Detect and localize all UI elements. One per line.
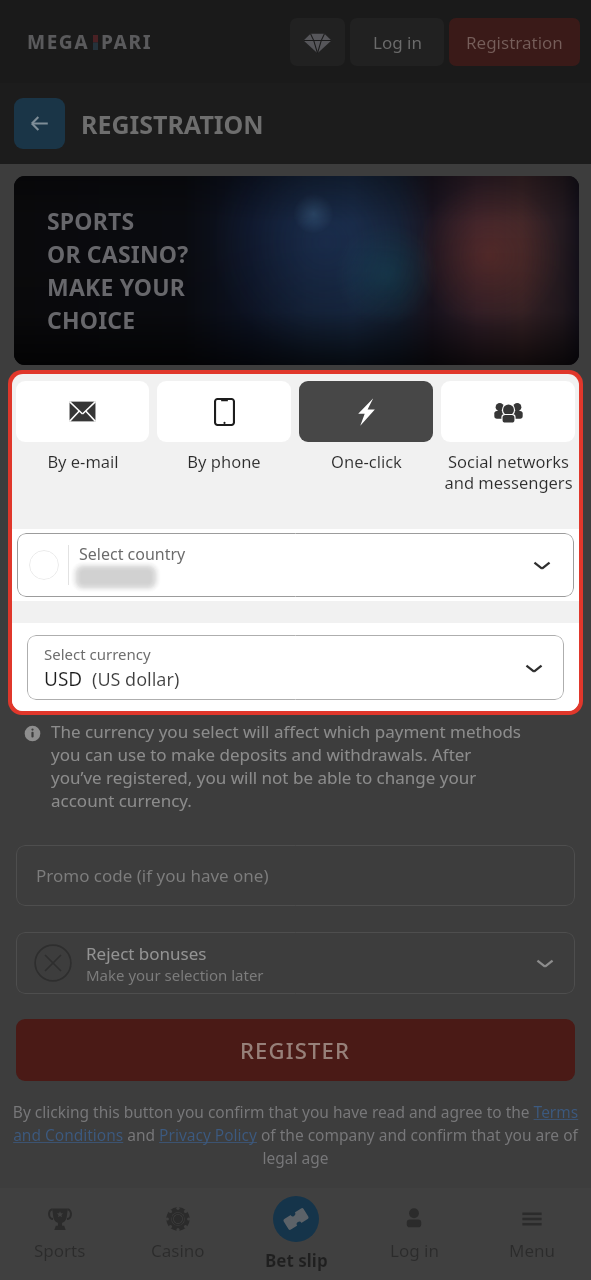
button[interactable]: Select country (17, 533, 574, 597)
staticText: Select country (79, 543, 186, 565)
staticText: Registration (466, 31, 563, 54)
button[interactable]: Sports (0, 1188, 119, 1280)
staticText: Promo code (if you have one) (36, 864, 269, 887)
button[interactable] (16, 381, 149, 442)
button[interactable]: Casino (119, 1188, 237, 1280)
button[interactable]: Menu (473, 1188, 591, 1280)
button[interactable]: Bet slip (237, 1188, 355, 1280)
staticText: Log in (390, 1239, 439, 1262)
button[interactable] (441, 381, 575, 442)
button[interactable]: Registration (449, 18, 580, 66)
button[interactable]: Bonuses (290, 18, 345, 66)
staticText: Bet slip (265, 1249, 328, 1272)
button[interactable]: Promo code (if you have one) (16, 845, 575, 906)
staticText: Sports (34, 1239, 86, 1262)
staticText: MEGA (27, 29, 90, 55)
staticText: PARI (101, 29, 153, 55)
staticText: Select currency (44, 644, 151, 664)
button[interactable]: Log in (355, 1188, 473, 1280)
staticText: Reject bonuses (86, 942, 207, 965)
button[interactable]: Select currency (27, 635, 564, 700)
staticText: Menu (509, 1239, 556, 1262)
staticText: By clicking this button you confirm that… (12, 1101, 579, 1169)
staticText: (US dollar) (92, 667, 180, 692)
button[interactable]: SPORTS OR CASINO? MAKE YOUR CHOICE (14, 176, 579, 365)
button[interactable] (299, 381, 433, 442)
button[interactable]: Reject bonuses (16, 932, 575, 994)
staticText: REGISTER (240, 1035, 351, 1065)
staticText: Log in (373, 31, 422, 54)
button[interactable]: Log in (350, 18, 444, 66)
staticText: One-click (331, 450, 402, 472)
button[interactable]: Back (14, 98, 65, 149)
staticText: Make your selection later (86, 965, 264, 985)
staticText: SPORTS OR CASINO? MAKE YOUR CHOICE (47, 205, 189, 336)
staticText: By e-mail (47, 450, 119, 472)
staticText: By phone (187, 450, 261, 472)
staticText: USD (44, 666, 83, 692)
staticText: REGISTRATION (81, 107, 264, 141)
staticText: The currency you select will affect whic… (51, 720, 525, 812)
staticText: Social networks and messengers (444, 450, 573, 494)
staticText: Casino (151, 1239, 205, 1262)
button[interactable]: REGISTER (16, 1019, 575, 1081)
button[interactable] (157, 381, 291, 442)
